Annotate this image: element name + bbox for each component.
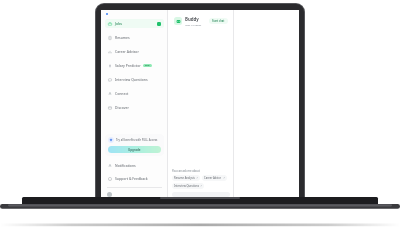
other: Open Resume Analysis [196,177,198,179]
button[interactable]: Career Advisor [105,47,164,56]
staticText: Upgrade [128,148,141,152]
staticText: Connect [115,91,129,96]
staticText: Interview Questions [115,77,148,82]
button[interactable]: Notifications [105,161,164,170]
staticText: Resumes [115,35,130,40]
other: Open Career Advice [223,177,225,179]
button[interactable]: Salary Predictor [105,61,164,70]
button[interactable]: Resume Analysis [172,175,200,181]
button[interactable]: Support & Feedback [105,174,164,183]
button[interactable]: Upgrade [108,146,161,153]
staticText: Interview Questions [174,184,199,188]
staticText: Your AI Agent [185,23,202,26]
staticText: Start chat [212,19,225,23]
staticText: Career Advisor [115,49,139,54]
staticText: Buddy [185,16,199,22]
button[interactable]: Connect [105,89,164,98]
button[interactable]: Buddy [172,14,230,28]
button[interactable]: Discover [105,103,164,112]
other: Open Interview Questions [200,185,202,187]
button[interactable]: Career Advice [202,175,227,181]
staticText: Salary Predictor [115,63,141,68]
staticText: Try all benefits with FULL Access [116,138,158,142]
staticText: You can ask me about [172,169,200,173]
button[interactable]: Jobs [105,19,164,28]
button[interactable]: Resumes [105,33,164,42]
staticText: Jobs [115,21,122,26]
button[interactable]: Interview Questions [105,75,164,84]
staticText: PRO [145,64,150,67]
staticText: Resume Analysis [174,176,195,180]
staticText: Career Advice [204,176,222,180]
staticText: Support & Feedback [115,176,148,181]
button[interactable]: Start chat [209,18,228,24]
button[interactable]: Interview Questions [172,183,204,189]
staticText: Discover [115,105,129,110]
staticText: Notifications [115,163,136,168]
button[interactable] [105,192,164,197]
button[interactable]: Try all benefits with FULL Access [105,134,164,156]
